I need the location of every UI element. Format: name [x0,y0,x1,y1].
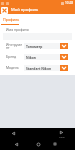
staticText: 10:28 [65,1,74,5]
staticText: Nikon [26,55,36,59]
staticText: Мой профиль [11,7,39,13]
staticText: Имя профиля [6,27,29,32]
button[interactable]: Тонометр [24,43,60,49]
button[interactable]: Back [12,140,20,148]
staticText: Профиль [3,17,20,22]
button[interactable]: Open dropdown [60,54,68,60]
button[interactable]: Standart Nikon [24,65,60,71]
staticText: Standart Nikon [26,66,52,70]
button[interactable]: Профиль [0,14,75,26]
button[interactable]: Open dropdown [60,65,68,71]
button[interactable]: Back [9,129,17,137]
staticText: Lang [59,135,65,138]
staticText: Модель [6,65,19,70]
staticText: Бренд [6,54,17,59]
button[interactable]: Nikon [24,54,60,60]
button[interactable]: Recent apps [57,128,65,136]
staticText: Инструмент [6,42,24,50]
button[interactable]: Recent apps [51,140,59,148]
button[interactable]: Home [34,140,42,148]
staticText: Тонометр [26,44,43,48]
button[interactable]: Open dropdown [60,43,68,49]
